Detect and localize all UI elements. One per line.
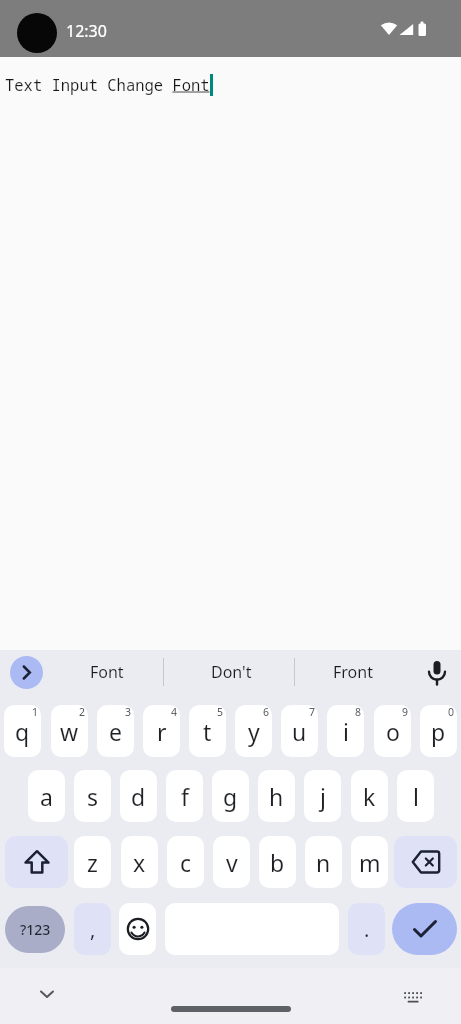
staticText: 0 <box>448 705 455 719</box>
staticText: f <box>181 781 189 812</box>
button[interactable]: i <box>327 705 364 757</box>
staticText: n <box>316 847 331 878</box>
button[interactable]: b <box>259 836 296 888</box>
button[interactable]: Front <box>306 652 400 692</box>
button[interactable]: p <box>420 705 457 757</box>
staticText: i <box>343 716 349 747</box>
button[interactable]: k <box>351 770 388 822</box>
staticText: Front <box>333 661 373 683</box>
staticText: 9 <box>402 705 409 719</box>
button[interactable] <box>420 652 454 692</box>
staticText: a <box>40 781 53 812</box>
button[interactable]: x <box>121 836 158 888</box>
staticText: m <box>359 847 381 878</box>
staticText: g <box>223 781 238 812</box>
button[interactable] <box>398 985 428 1009</box>
staticText: 7 <box>309 705 316 719</box>
button[interactable]: d <box>120 770 157 822</box>
button[interactable]: . <box>348 903 385 955</box>
staticText: b <box>270 847 285 878</box>
staticText: Don't <box>211 661 252 683</box>
button[interactable]: g <box>212 770 249 822</box>
button[interactable] <box>394 836 457 888</box>
button[interactable]: o <box>374 705 411 757</box>
button[interactable]: w <box>51 705 88 757</box>
staticText: 6 <box>263 705 270 719</box>
staticText: 3 <box>125 705 132 719</box>
staticText: u <box>292 716 307 747</box>
button[interactable]: ?123 <box>5 906 65 953</box>
button[interactable] <box>392 903 457 955</box>
staticText: 12:30 <box>66 20 107 42</box>
staticText: y <box>248 716 260 747</box>
button[interactable] <box>119 903 156 955</box>
button[interactable]: y <box>235 705 272 757</box>
staticText: 1 <box>32 705 39 719</box>
staticText: Text Input Change Font <box>5 74 210 95</box>
staticText: o <box>386 716 400 747</box>
staticText: c <box>180 847 192 878</box>
button[interactable]: j <box>304 770 341 822</box>
staticText: z <box>87 847 98 878</box>
staticText: v <box>226 847 238 878</box>
button[interactable]: l <box>397 770 434 822</box>
staticText: s <box>87 781 99 812</box>
staticText: x <box>133 847 146 878</box>
button[interactable]: m <box>351 836 388 888</box>
staticText: w <box>60 716 79 747</box>
staticText: 8 <box>355 705 362 719</box>
button[interactable]: v <box>213 836 250 888</box>
button[interactable]: q <box>4 705 41 757</box>
button[interactable]: u <box>281 705 318 757</box>
button[interactable]: Don't <box>184 652 278 692</box>
staticText: d <box>131 781 146 812</box>
button[interactable]: r <box>143 705 180 757</box>
button[interactable]: h <box>258 770 295 822</box>
staticText: t <box>203 716 212 747</box>
button[interactable]: n <box>305 836 342 888</box>
staticText: l <box>413 781 419 812</box>
button[interactable]: f <box>166 770 203 822</box>
staticText: r <box>157 716 167 747</box>
button[interactable]: e <box>97 705 134 757</box>
staticText: 2 <box>79 705 86 719</box>
staticText: . <box>364 916 370 943</box>
staticText: h <box>269 781 284 812</box>
staticText: , <box>90 916 96 943</box>
button[interactable] <box>10 656 43 689</box>
staticText: j <box>320 781 326 812</box>
button[interactable]: t <box>189 705 226 757</box>
staticText: q <box>15 716 30 747</box>
button[interactable] <box>31 980 63 1008</box>
button[interactable]: a <box>28 770 65 822</box>
button[interactable]: Font <box>60 652 154 692</box>
staticText: p <box>431 716 446 747</box>
button[interactable]: c <box>167 836 204 888</box>
button[interactable]: , <box>74 903 111 955</box>
button[interactable]: z <box>74 836 111 888</box>
staticText: k <box>363 781 376 812</box>
button[interactable]: s <box>74 770 111 822</box>
staticText: 4 <box>171 705 178 719</box>
staticText: e <box>109 716 122 747</box>
staticText: 5 <box>217 705 224 719</box>
button[interactable] <box>5 836 68 888</box>
staticText: ?123 <box>20 920 51 939</box>
staticText: Font <box>90 661 124 683</box>
